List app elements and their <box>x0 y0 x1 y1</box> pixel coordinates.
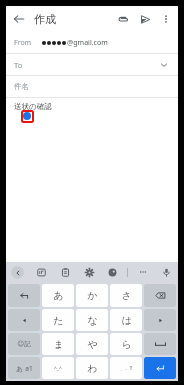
button[interactable]: More <box>135 264 151 280</box>
staticText: ^_^ <box>54 365 62 372</box>
staticText: な <box>87 314 98 327</box>
button[interactable]: Themes <box>104 264 120 280</box>
button[interactable]: ☺記 <box>8 333 40 355</box>
button[interactable]: は <box>110 309 142 331</box>
button[interactable]: Show keyboard options <box>9 264 25 280</box>
button[interactable]: Send <box>134 8 156 30</box>
staticText: 送状の確認 <box>14 102 52 111</box>
staticText: は <box>121 314 132 327</box>
staticText: か <box>87 289 98 302</box>
staticText: や <box>87 338 98 351</box>
staticText: ☺記 <box>17 340 31 348</box>
button[interactable]: ら <box>110 333 142 355</box>
staticText: わ <box>87 362 98 375</box>
staticText: さ <box>121 289 132 302</box>
staticText: た <box>53 314 64 327</box>
staticText: ま <box>53 338 64 351</box>
staticText: To <box>14 60 23 70</box>
button[interactable]: Delete <box>144 284 176 307</box>
button[interactable]: Settings <box>81 264 97 280</box>
button[interactable]: 件名 <box>6 76 178 97</box>
button[interactable]: あ <box>42 284 74 307</box>
staticText: 件名 <box>14 82 29 91</box>
button[interactable]: Move cursor left <box>8 309 40 331</box>
button[interactable]: Voice input <box>158 264 174 280</box>
button[interactable]: Attach file <box>112 8 134 30</box>
button[interactable]: Clipboard <box>57 264 73 280</box>
button[interactable]: More options <box>156 9 176 29</box>
button[interactable]: や <box>76 333 108 355</box>
button[interactable]: Enter <box>144 357 176 379</box>
staticText: あ a1 <box>16 364 33 373</box>
button[interactable]: Space <box>144 333 176 355</box>
button[interactable]: た <box>42 309 74 331</box>
button[interactable]: From <box>6 32 178 53</box>
button[interactable]: 、。?! <box>110 357 142 379</box>
button[interactable]: な <box>76 309 108 331</box>
button[interactable]: GIF <box>33 264 49 280</box>
button[interactable]: あ a1 <box>8 357 40 379</box>
button[interactable]: さ <box>110 284 142 307</box>
button[interactable]: Move cursor right <box>144 309 176 331</box>
staticText: 、。?! <box>120 365 133 371</box>
staticText: ら <box>121 338 132 351</box>
staticText: From <box>14 38 32 48</box>
button[interactable]: か <box>76 284 108 307</box>
button[interactable]: To <box>6 54 178 75</box>
button[interactable]: ^_^ <box>42 357 74 379</box>
button[interactable]: ま <box>42 333 74 355</box>
other: Expand recipients <box>158 59 170 71</box>
button[interactable]: Back <box>6 6 32 32</box>
staticText: @gmail.com <box>67 38 108 48</box>
staticText: あ <box>53 289 64 302</box>
button[interactable]: わ <box>76 357 108 379</box>
staticText: 作成 <box>34 12 56 26</box>
button[interactable]: Undo <box>8 284 40 307</box>
